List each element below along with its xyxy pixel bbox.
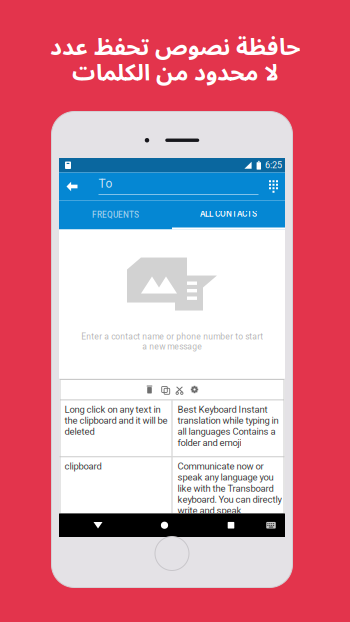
button[interactable]: Cut — [172, 383, 187, 395]
staticText: clipboard — [65, 461, 102, 472]
button[interactable]: ALL CONTACTS — [172, 200, 285, 229]
staticText: FREQUENTS — [92, 210, 139, 220]
staticText: لا محدود من الكلمات — [71, 49, 278, 98]
staticText: 6:25 — [265, 160, 282, 170]
staticText: Long click on any text in the clipboard … — [65, 404, 168, 437]
button[interactable]: Delete — [142, 383, 157, 395]
button[interactable]: Keyboard — [261, 513, 281, 537]
button[interactable]: Home — [152, 513, 176, 537]
staticText: حافظة نصوص تحفظ عدد — [49, 23, 300, 72]
button[interactable]: Dial pad — [263, 172, 283, 200]
staticText: Best Keyboard Instant translation while … — [177, 404, 278, 448]
staticText: Communicate now or speak any language yo… — [177, 461, 281, 516]
button[interactable]: Back — [86, 513, 110, 537]
button[interactable]: Settings — [187, 383, 202, 395]
staticText: ALL CONTACTS — [200, 209, 257, 219]
staticText: To — [98, 176, 112, 191]
button[interactable]: Recents — [219, 513, 243, 537]
button[interactable]: Copy — [157, 383, 172, 395]
button[interactable]: Back — [59, 172, 85, 200]
button[interactable]: FREQUENTS — [59, 200, 172, 229]
staticText: Enter a contact name or phone number to … — [81, 331, 263, 351]
